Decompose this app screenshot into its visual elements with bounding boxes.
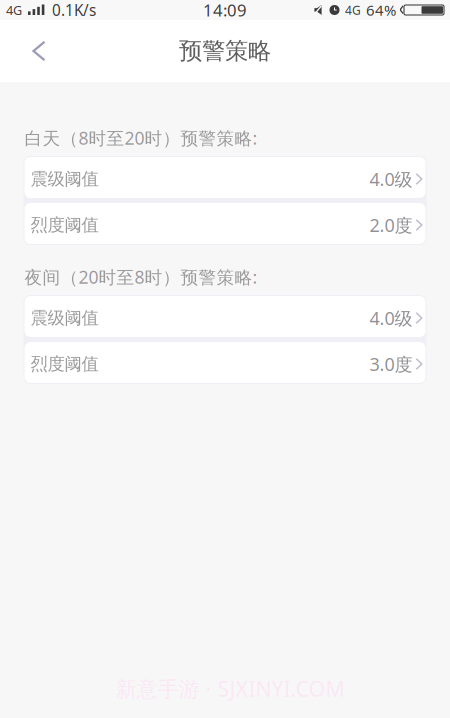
- staticText: 烈度阈值: [30, 214, 98, 236]
- button[interactable]: Back: [0, 25, 78, 77]
- staticText: 预警策略: [179, 36, 271, 66]
- staticText: 0.1K/s: [52, 0, 96, 20]
- button[interactable]: 震级阈值: [24, 296, 425, 337]
- button[interactable]: 烈度阈值: [24, 342, 425, 383]
- staticText: 4G: [6, 1, 22, 19]
- staticText: 64%: [366, 0, 396, 20]
- staticText: 14:09: [203, 0, 247, 21]
- button[interactable]: 烈度阈值: [24, 203, 425, 244]
- staticText: 震级阈值: [30, 307, 98, 329]
- staticText: 4G: [345, 2, 361, 18]
- staticText: 新意手游 · SJXINYI.COM: [115, 674, 344, 703]
- staticText: 烈度阈值: [30, 353, 98, 375]
- staticText: 4.0级: [369, 167, 412, 191]
- staticText: 3.0度: [369, 352, 412, 376]
- staticText: 夜间（20时至8时）预警策略:: [24, 265, 257, 289]
- staticText: 4.0级: [369, 306, 412, 330]
- button[interactable]: 震级阈值: [24, 157, 425, 198]
- staticText: 白天（8时至20时）预警策略:: [24, 126, 257, 150]
- staticText: 震级阈值: [30, 168, 98, 190]
- staticText: 2.0度: [369, 213, 412, 237]
